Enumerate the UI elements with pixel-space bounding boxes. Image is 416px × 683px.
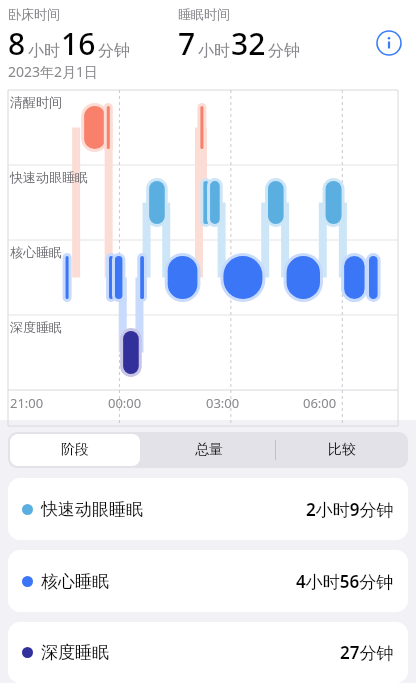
staticText: 深度睡眠: [10, 319, 62, 335]
staticText: 快速动眼睡眠: [10, 169, 88, 185]
staticText: 核心睡眠: [41, 571, 109, 592]
staticText: 21:00: [10, 394, 44, 412]
staticText: 2023年2月1日: [8, 62, 99, 81]
staticText: 00:00: [108, 394, 142, 412]
button[interactable]: About sleep stages: [374, 28, 404, 58]
staticText: 总量: [195, 441, 223, 459]
button[interactable]: 清醒时间: [0, 88, 416, 420]
staticText: 快速动眼睡眠: [41, 499, 143, 520]
staticText: 核心睡眠: [10, 244, 62, 260]
staticText: 32: [231, 23, 266, 64]
staticText: 卧床时间: [8, 6, 60, 22]
button[interactable]: 比较: [277, 434, 406, 466]
staticText: 小时: [198, 41, 230, 61]
staticText: 06:00: [303, 394, 337, 412]
staticText: 分钟: [98, 41, 130, 61]
staticText: 8: [8, 23, 26, 64]
staticText: 16: [61, 23, 96, 64]
button[interactable]: 阶段: [10, 434, 140, 466]
button[interactable]: 核心睡眠: [8, 550, 408, 612]
button[interactable]: 深度睡眠: [8, 622, 408, 683]
staticText: 4小时56分钟: [296, 570, 394, 593]
staticText: 分钟: [268, 41, 300, 61]
staticText: 27分钟: [340, 641, 394, 664]
button[interactable]: 快速动眼睡眠: [8, 478, 408, 540]
staticText: 清醒时间: [10, 94, 62, 110]
staticText: 小时: [28, 41, 60, 61]
staticText: 03:00: [206, 394, 240, 412]
staticText: 比较: [328, 441, 356, 459]
staticText: 阶段: [61, 441, 89, 459]
staticText: 7: [178, 23, 196, 64]
staticText: 睡眠时间: [178, 6, 230, 22]
button[interactable]: 总量: [144, 434, 273, 466]
staticText: 深度睡眠: [41, 642, 109, 663]
staticText: 2小时9分钟: [306, 498, 394, 521]
